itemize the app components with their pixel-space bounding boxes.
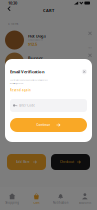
staticText: Hot Dogs — [28, 33, 46, 39]
button[interactable]: Shopping — [0, 187, 24, 210]
staticText: A verification code has been sent to you… — [10, 79, 48, 81]
staticText: $12.5 — [28, 41, 37, 47]
staticText: Add More — [16, 160, 30, 164]
button[interactable]: Burger — [0, 52, 97, 71]
staticText: CART — [43, 8, 54, 13]
button[interactable]: Add More — [7, 154, 46, 170]
staticText: Checkout — [60, 160, 74, 164]
button[interactable]: Pizza — [0, 74, 97, 93]
staticText: 10:30 — [8, 0, 17, 6]
button[interactable]: Close — [82, 69, 87, 74]
staticText: Enter Code — [19, 104, 35, 107]
button[interactable]: Accounts — [73, 187, 97, 210]
staticText: Cart — [33, 201, 39, 204]
staticText: 4 items — [8, 22, 18, 25]
staticText: $6.50 — [28, 107, 37, 113]
button[interactable]: Hot Dogs — [0, 30, 97, 49]
button[interactable]: Sandwich — [0, 96, 97, 115]
button[interactable]: Notification — [48, 187, 73, 210]
staticText: Company · Melbourne — [28, 105, 43, 107]
button[interactable]: Resend again — [10, 84, 31, 92]
button[interactable]: Remove item — [88, 53, 92, 57]
button[interactable]: Remove item — [88, 31, 92, 35]
staticText: Shopping — [5, 201, 19, 204]
staticText: Email Verification — [10, 69, 45, 74]
button[interactable]: Checkout — [51, 154, 90, 170]
button[interactable]: Cart — [24, 187, 48, 210]
staticText: $14.2 — [28, 85, 37, 91]
button[interactable]: Continue — [10, 118, 87, 132]
staticText: Sandwich — [28, 99, 47, 105]
staticText: john.william@nya.com — [10, 83, 23, 84]
staticText: Resend again — [10, 88, 31, 92]
staticText: Pizza — [28, 77, 37, 83]
button[interactable]: Back — [7, 6, 16, 15]
staticText: Notification — [53, 201, 69, 204]
staticText: Accounts — [79, 201, 91, 204]
staticText: Burger — [28, 55, 43, 61]
staticText: Continue — [36, 123, 50, 127]
